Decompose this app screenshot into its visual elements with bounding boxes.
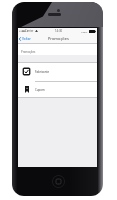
staticText: 14:30	[55, 29, 63, 33]
staticText: Promoções	[21, 50, 36, 54]
staticText: Promoções	[48, 36, 69, 41]
staticText: Voltar	[22, 37, 31, 41]
staticText: Cupom	[35, 88, 45, 92]
button[interactable]: Voltar	[18, 34, 33, 44]
button[interactable]: Fabricante	[18, 62, 97, 81]
staticText: Fabricante	[35, 70, 50, 74]
staticText: 100%	[81, 30, 88, 33]
staticText: Carrier	[25, 29, 34, 33]
button[interactable]: Cupom	[18, 81, 97, 98]
